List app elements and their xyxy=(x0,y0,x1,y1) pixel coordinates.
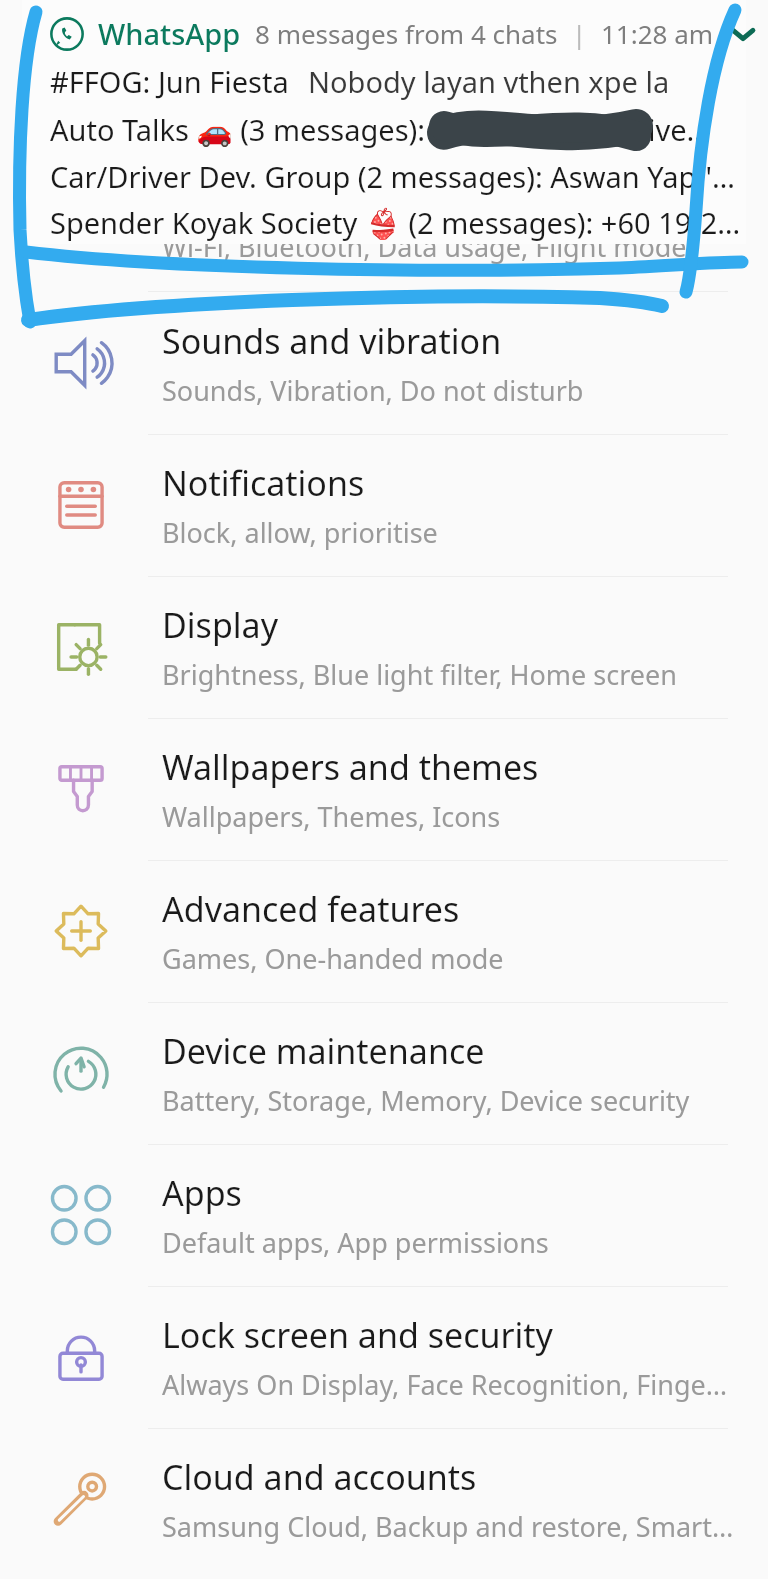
button[interactable]: Display xyxy=(0,576,768,718)
button[interactable]: Device maintenance xyxy=(0,1002,768,1144)
button[interactable]: Expand xyxy=(726,17,760,51)
staticText: Car/Driver Dev. Group (2 messages): Aswa… xyxy=(50,157,697,196)
button[interactable]: Advanced features xyxy=(0,860,768,1002)
staticText: Sounds and vibration xyxy=(162,318,502,364)
staticText: Wallpapers, Themes, Icons xyxy=(162,798,501,835)
button[interactable]: Sounds and vibration xyxy=(0,292,768,434)
button[interactable]: Apps xyxy=(0,1144,768,1286)
staticText: Notifications xyxy=(162,460,365,506)
button[interactable]: Wi-Fi, Bluetooth, Data usage, Flight mod… xyxy=(0,0,768,292)
staticText: 11:28 am xyxy=(601,16,714,51)
button[interactable]: Notifications xyxy=(0,434,768,576)
staticText: | xyxy=(572,16,587,51)
button[interactable]: Wallpapers and themes xyxy=(0,718,768,860)
staticText: Apps xyxy=(162,1170,242,1216)
staticText: i'… xyxy=(698,157,735,196)
staticText: WhatsApp xyxy=(98,14,241,53)
staticText: Display xyxy=(162,602,278,648)
staticText: Brightness, Blue light filter, Home scre… xyxy=(162,656,677,693)
other: WhatsApp xyxy=(50,17,84,51)
staticText: Default apps, App permissions xyxy=(162,1224,549,1261)
staticText: Cloud and accounts xyxy=(162,1454,477,1500)
staticText: Samsung Cloud, Backup and restore, Smart… xyxy=(162,1508,734,1545)
staticText: Nobody layan vthen xpe la xyxy=(308,62,670,101)
staticText: Wi-Fi, Bluetooth, Data usage, Flight mod… xyxy=(162,228,687,265)
button[interactable]: Cloud and accounts xyxy=(0,1428,768,1570)
staticText: Device maintenance xyxy=(162,1028,485,1074)
staticText: 8 messages from 4 chats xyxy=(255,16,558,51)
button[interactable]: Lock screen and security xyxy=(0,1286,768,1428)
staticText: Block, allow, prioritise xyxy=(162,514,438,551)
staticText: Battery, Storage, Memory, Device securit… xyxy=(162,1082,690,1119)
staticText: Always On Display, Face Recognition, Fin… xyxy=(162,1366,728,1403)
staticText: Games, One-handed mode xyxy=(162,940,504,977)
staticText: Auto Talks 🚗 (3 messages): +6 xyxy=(50,110,466,149)
staticText: Wallpapers and themes xyxy=(162,744,539,790)
staticText: ive… xyxy=(648,110,710,149)
staticText: Advanced features xyxy=(162,886,460,932)
button[interactable]: WhatsApp xyxy=(22,0,746,244)
staticText: #FFOG: Jun Fiesta xyxy=(50,62,289,101)
staticText: Spender Koyak Society 👙 (2 messages): +6… xyxy=(50,203,741,242)
staticText: Lock screen and security xyxy=(162,1312,553,1358)
staticText: Sounds, Vibration, Do not disturb xyxy=(162,372,584,409)
